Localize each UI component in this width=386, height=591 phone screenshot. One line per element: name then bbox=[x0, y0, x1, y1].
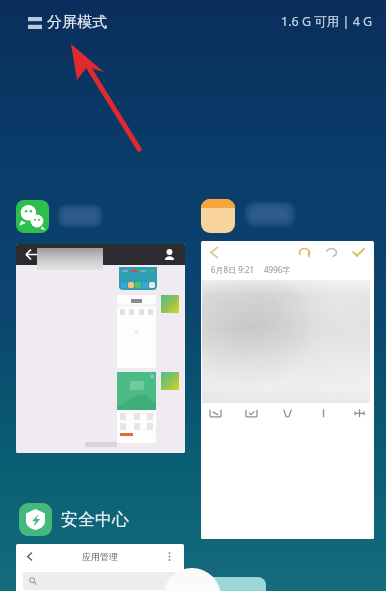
button[interactable]: 分屏模式 bbox=[28, 13, 107, 32]
button[interactable]: 应用管理 bbox=[16, 544, 184, 591]
button[interactable]: WeChat bbox=[16, 200, 49, 233]
staticText: 1.6 G 可用 | 4 G bbox=[281, 13, 373, 30]
button[interactable] bbox=[16, 244, 185, 453]
staticText: 4996字 bbox=[264, 264, 291, 275]
staticText: 6月8日 9:21 bbox=[211, 264, 255, 275]
staticText: 应用管理 bbox=[82, 551, 118, 562]
staticText: 分屏模式 bbox=[47, 13, 107, 32]
button[interactable]: 6月8日 9:21 bbox=[201, 241, 374, 539]
button[interactable]: Notes bbox=[201, 199, 235, 233]
button[interactable]: Home bbox=[163, 568, 221, 591]
staticText: 安全中心 bbox=[61, 509, 129, 530]
button[interactable]: Security Center bbox=[19, 503, 52, 536]
